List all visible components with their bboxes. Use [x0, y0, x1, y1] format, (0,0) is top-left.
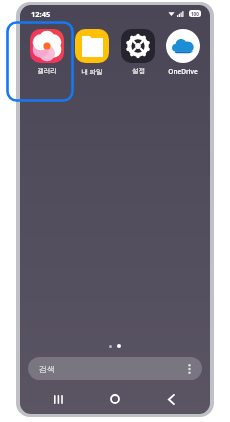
button[interactable]: Recent apps	[42, 388, 76, 410]
button[interactable]: 설정	[116, 26, 160, 78]
staticText: 100	[191, 11, 199, 17]
button[interactable]	[6, 21, 74, 102]
button[interactable]: 내 파일	[70, 26, 114, 79]
staticText: 내 파일	[81, 67, 103, 76]
button[interactable]: 갤러리	[25, 26, 69, 78]
staticText: 설정	[132, 67, 145, 75]
button[interactable]: OneDrive	[161, 26, 205, 79]
button[interactable]: 검색	[28, 357, 202, 380]
staticText: 갤러리	[37, 67, 57, 75]
other: More options	[188, 363, 191, 375]
staticText: 검색	[39, 364, 55, 374]
staticText: OneDrive	[168, 67, 198, 76]
button[interactable]: Back	[154, 388, 188, 410]
button[interactable]: Home	[98, 388, 132, 410]
staticText: 12:45	[31, 9, 51, 19]
